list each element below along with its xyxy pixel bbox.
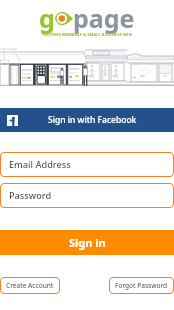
button[interactable]: Sign in <box>0 230 174 255</box>
button[interactable]: Forgot Password <box>109 277 174 294</box>
staticText: Sign in with Facebook <box>48 114 137 126</box>
button[interactable]: Create Account <box>0 277 60 294</box>
button[interactable]: Sign in with Facebook <box>0 108 174 132</box>
staticText: Forgot Password <box>115 281 168 290</box>
staticText: Create Account <box>6 281 54 290</box>
button[interactable]: Password <box>0 183 174 208</box>
staticText: g <box>39 1 55 35</box>
button[interactable]: Email Address <box>0 152 174 177</box>
staticText: Sign in <box>69 235 106 250</box>
staticText: HELPING MEMBERS & SMALL BUSINESS WIN <box>43 32 132 37</box>
staticText: Password <box>9 189 52 202</box>
staticText: page <box>73 1 135 35</box>
staticText: Email Address <box>9 158 71 171</box>
